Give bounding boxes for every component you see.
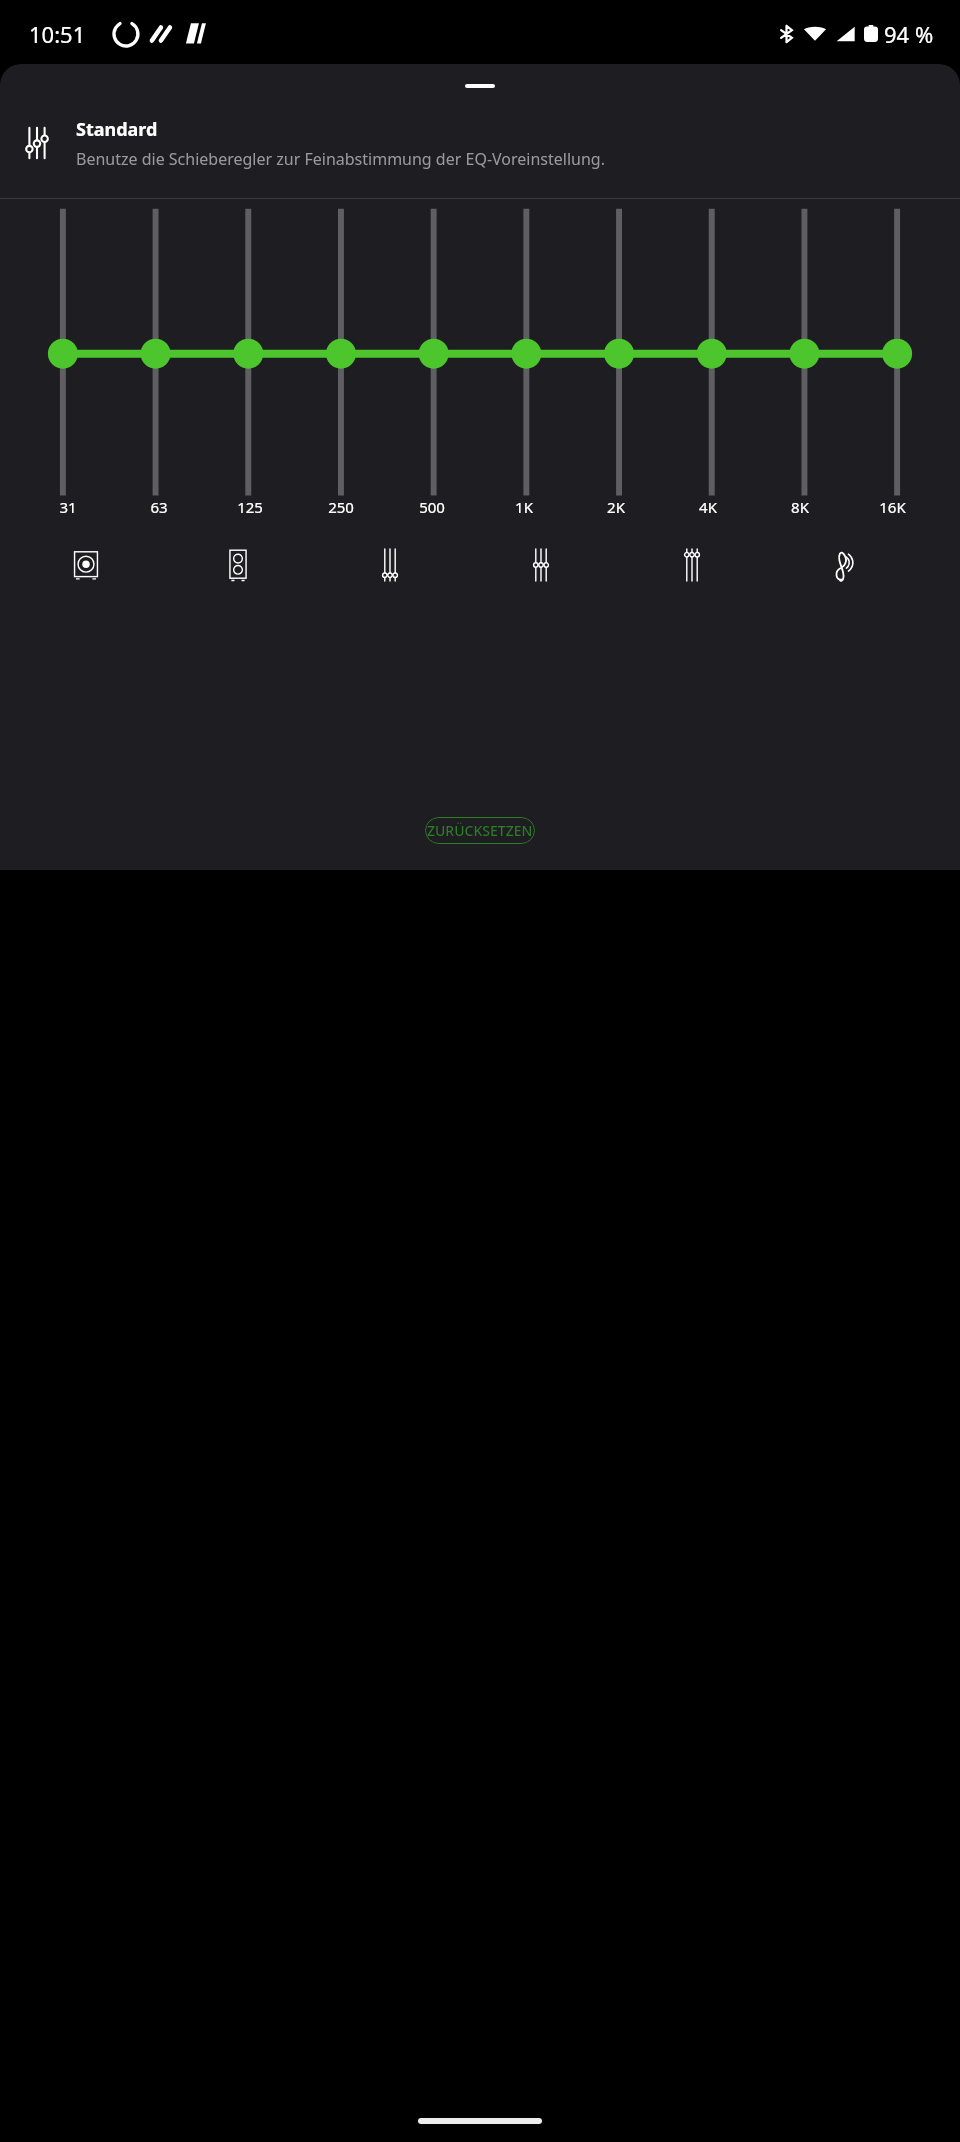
button[interactable]: Lautsprecher xyxy=(162,539,314,591)
button[interactable]: Subwoofer xyxy=(10,539,162,591)
staticText: 63 xyxy=(150,497,168,517)
staticText: 4K xyxy=(699,497,717,517)
button[interactable]: Klassik xyxy=(767,539,918,591)
staticText: 94 % xyxy=(884,19,934,49)
staticText: 1K xyxy=(515,497,533,517)
staticText: 10:51 xyxy=(29,19,86,49)
staticText: Standard xyxy=(76,117,158,142)
staticText: ZURÜCKSETZEN xyxy=(427,821,533,840)
staticText: 125 xyxy=(237,497,263,517)
button[interactable]: Bass xyxy=(314,539,465,591)
button[interactable]: Equalizer band sliders xyxy=(0,199,960,497)
button[interactable]: Mitten xyxy=(465,539,616,591)
staticText: 2K xyxy=(607,497,625,517)
button[interactable]: ZURÜCKSETZEN xyxy=(425,817,535,844)
other: Equalizer preset xyxy=(18,124,56,162)
staticText: Benutze die Schieberegler zur Feinabstim… xyxy=(76,148,605,170)
staticText: 16K xyxy=(879,497,906,517)
button[interactable]: Höhen xyxy=(616,539,767,591)
staticText: 31 xyxy=(59,497,77,517)
staticText: 250 xyxy=(328,497,354,517)
button[interactable]: Equalizer preset xyxy=(0,88,960,198)
staticText: 500 xyxy=(419,497,445,517)
staticText: 8K xyxy=(791,497,809,517)
